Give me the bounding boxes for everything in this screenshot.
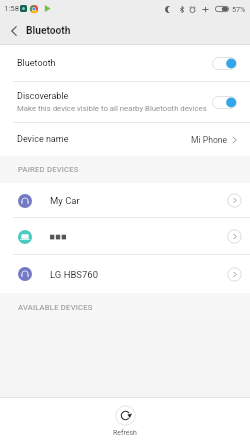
staticText: Discoverable bbox=[17, 91, 69, 102]
staticText: Device name bbox=[17, 134, 69, 145]
button[interactable]: Refresh bbox=[103, 403, 147, 439]
staticText: LG HBS760 bbox=[50, 269, 98, 280]
button[interactable]: Device settings bbox=[227, 229, 242, 244]
staticText: AVAILABLE DEVICES bbox=[18, 303, 93, 312]
button[interactable]: My Car bbox=[0, 183, 250, 218]
button[interactable]: Discoverable bbox=[0, 82, 250, 122]
button[interactable]: Device settings bbox=[0, 218, 250, 255]
staticText: Refresh bbox=[113, 429, 137, 437]
staticText: Mi Phone bbox=[191, 135, 228, 145]
staticText: Make this device visible to all nearby B… bbox=[17, 104, 207, 113]
staticText: 1:58 bbox=[4, 4, 20, 13]
staticText: My Car bbox=[50, 195, 80, 206]
button[interactable]: Toggle bbox=[212, 96, 237, 109]
button[interactable]: Device settings bbox=[227, 267, 242, 282]
button[interactable]: Device name bbox=[0, 123, 250, 156]
button[interactable]: Toggle bbox=[212, 57, 237, 70]
staticText: Bluetooth bbox=[17, 58, 56, 69]
staticText: Bluetooth bbox=[26, 25, 71, 37]
button[interactable]: Back bbox=[3, 20, 25, 42]
button[interactable]: LG HBS760 bbox=[0, 255, 250, 293]
button[interactable]: Bluetooth bbox=[0, 45, 250, 81]
staticText: PAIRED DEVICES bbox=[18, 165, 79, 174]
button[interactable]: Device settings bbox=[227, 193, 242, 208]
staticText: 57% bbox=[232, 5, 246, 13]
